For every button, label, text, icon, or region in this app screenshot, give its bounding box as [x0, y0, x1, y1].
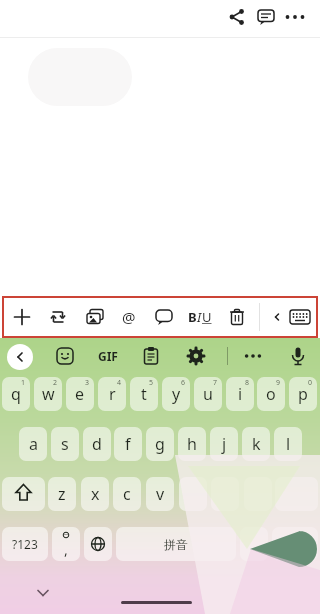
staticText: 7	[213, 378, 218, 388]
button[interactable]: GIF	[93, 345, 123, 367]
button[interactable]: d	[83, 427, 111, 461]
button[interactable]: @	[118, 305, 140, 329]
button[interactable]: v	[146, 477, 174, 511]
button[interactable]	[7, 344, 33, 370]
staticText: 5	[149, 378, 154, 388]
button[interactable]	[240, 527, 268, 561]
button[interactable]	[10, 305, 34, 329]
staticText: 8	[245, 378, 250, 388]
staticText: q	[11, 383, 21, 405]
staticText: B	[188, 308, 197, 326]
staticText: j	[222, 433, 227, 455]
button[interactable]: B	[186, 305, 214, 329]
staticText: o	[266, 383, 276, 405]
button[interactable]: u	[194, 377, 222, 411]
button[interactable]: ?123	[2, 527, 48, 561]
staticText: x	[91, 483, 100, 505]
staticText: h	[187, 433, 197, 455]
button[interactable]	[254, 5, 278, 29]
staticText: v	[156, 483, 165, 505]
button[interactable]: q	[2, 377, 30, 411]
button[interactable]	[179, 477, 207, 511]
button[interactable]	[138, 343, 164, 369]
staticText: GIF	[98, 348, 118, 364]
button[interactable]	[283, 5, 307, 29]
staticText: k	[252, 433, 261, 455]
staticText: 1	[21, 378, 26, 388]
staticText: y	[172, 383, 181, 405]
staticText: 6	[181, 378, 186, 388]
button[interactable]	[211, 477, 239, 511]
button[interactable]	[285, 343, 311, 369]
button[interactable]	[2, 477, 45, 511]
button[interactable]: f	[114, 427, 142, 461]
button[interactable]: i	[226, 377, 254, 411]
button[interactable]: p	[289, 377, 317, 411]
staticText: ,	[64, 540, 68, 559]
staticText: g	[155, 433, 165, 455]
staticText: r	[109, 383, 116, 405]
button[interactable]	[270, 306, 284, 328]
button[interactable]	[84, 527, 112, 561]
button[interactable]: o	[257, 377, 285, 411]
button[interactable]: r	[98, 377, 126, 411]
staticText: e	[75, 383, 85, 405]
staticText: d	[92, 433, 102, 455]
button[interactable]: a	[19, 427, 47, 461]
button[interactable]	[275, 477, 318, 511]
staticText: l	[286, 433, 291, 455]
staticText: ?123	[12, 536, 38, 552]
staticText: c	[123, 483, 131, 505]
button[interactable]: y	[162, 377, 190, 411]
button[interactable]	[83, 305, 107, 329]
button[interactable]	[287, 305, 313, 329]
button[interactable]: e	[66, 377, 94, 411]
button[interactable]	[46, 305, 70, 329]
staticText: u	[203, 383, 213, 405]
staticText: z	[58, 483, 66, 505]
staticText: 拼音	[164, 537, 188, 552]
button[interactable]	[33, 584, 53, 602]
staticText: U	[202, 308, 212, 326]
button[interactable]: t	[130, 377, 158, 411]
staticText: @	[122, 307, 136, 327]
button[interactable]: h	[178, 427, 206, 461]
button[interactable]	[183, 343, 209, 369]
staticText: s	[61, 433, 69, 455]
button[interactable]: c	[113, 477, 141, 511]
staticText: p	[298, 383, 308, 405]
staticText: w	[42, 383, 55, 405]
button[interactable]: 拼音	[116, 527, 236, 561]
button[interactable]: l	[274, 427, 302, 461]
staticText: t	[141, 383, 147, 405]
button[interactable]	[225, 305, 249, 329]
button[interactable]	[152, 305, 176, 329]
staticText: 2	[53, 378, 58, 388]
button[interactable]: k	[242, 427, 270, 461]
staticText: 4	[117, 378, 122, 388]
button[interactable]	[240, 343, 266, 369]
button[interactable]: g	[146, 427, 174, 461]
button[interactable]: w	[34, 377, 62, 411]
button[interactable]: j	[210, 427, 238, 461]
staticText: 0	[308, 378, 313, 388]
staticText: I	[197, 308, 202, 326]
button[interactable]	[52, 343, 78, 369]
button[interactable]: s	[51, 427, 79, 461]
staticText: f	[125, 433, 131, 455]
button[interactable]: x	[81, 477, 109, 511]
staticText: 3	[85, 378, 90, 388]
button[interactable]	[272, 527, 318, 561]
button[interactable]	[225, 5, 249, 29]
button[interactable]: z	[48, 477, 76, 511]
staticText: 9	[276, 378, 281, 388]
button[interactable]	[52, 527, 80, 561]
staticText: a	[29, 433, 38, 455]
staticText: i	[238, 383, 243, 405]
